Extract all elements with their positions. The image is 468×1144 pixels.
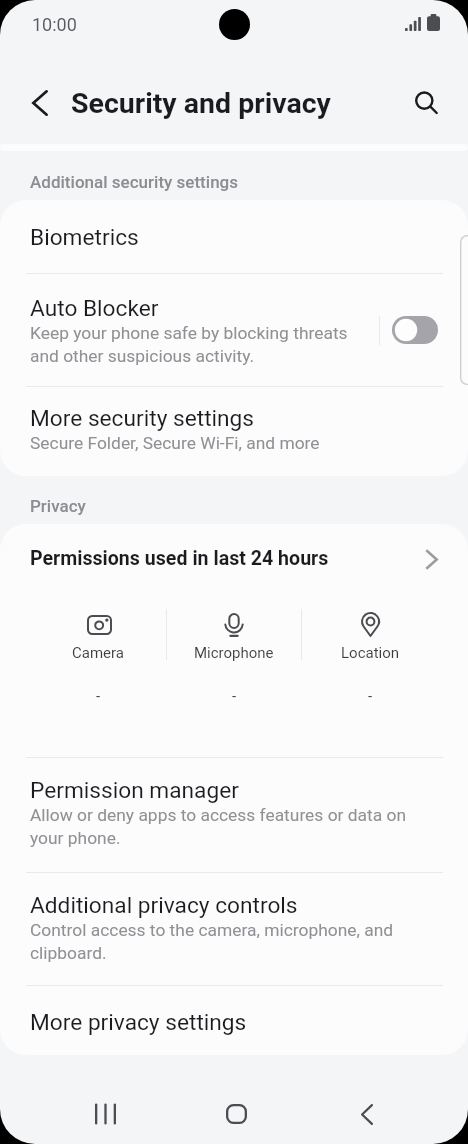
button[interactable]: Navigate up xyxy=(17,80,63,126)
staticText: - xyxy=(232,687,237,705)
staticText: - xyxy=(96,687,101,705)
staticText: Auto Blocker xyxy=(30,295,159,322)
staticText: Permissions used in last 24 hours xyxy=(30,547,329,570)
staticText: Secure Folder, Secure Wi-Fi, and more xyxy=(30,433,320,453)
staticText: Security and privacy xyxy=(71,87,331,120)
staticText: Microphone xyxy=(194,644,274,662)
staticText: Biometrics xyxy=(30,224,139,251)
button[interactable]: Auto Blocker xyxy=(0,274,379,386)
staticText: Additional security settings xyxy=(30,172,239,192)
staticText: 10:00 xyxy=(32,14,77,35)
staticText: Camera xyxy=(72,644,124,662)
button[interactable]: Biometrics xyxy=(0,200,468,273)
staticText: - xyxy=(368,687,373,705)
button[interactable]: Auto Blocker xyxy=(392,316,438,344)
staticText: Keep your phone safe by blocking threats… xyxy=(30,323,348,366)
button[interactable]: Camera xyxy=(30,594,166,705)
staticText: Location xyxy=(341,644,400,662)
staticText: Additional privacy controls xyxy=(30,892,298,919)
button[interactable]: More privacy settings xyxy=(0,986,468,1055)
button[interactable]: Home xyxy=(206,1084,266,1144)
button[interactable]: Permissions used in last 24 hours xyxy=(0,524,468,594)
button[interactable]: Microphone xyxy=(166,594,302,705)
button[interactable]: Additional privacy controls xyxy=(0,873,468,985)
staticText: Allow or deny apps to access features or… xyxy=(30,805,407,848)
staticText: Privacy xyxy=(30,496,86,516)
button[interactable]: Recent apps xyxy=(75,1084,135,1144)
staticText: Permission manager xyxy=(30,777,239,804)
button[interactable]: Permission manager xyxy=(0,758,468,872)
button[interactable]: Location xyxy=(302,594,438,705)
staticText: More security settings xyxy=(30,405,255,432)
staticText: More privacy settings xyxy=(30,1009,247,1036)
staticText: Control access to the camera, microphone… xyxy=(30,920,394,963)
button[interactable]: More security settings xyxy=(0,387,468,476)
button[interactable]: Back xyxy=(337,1084,397,1144)
button[interactable]: Search xyxy=(402,78,448,124)
